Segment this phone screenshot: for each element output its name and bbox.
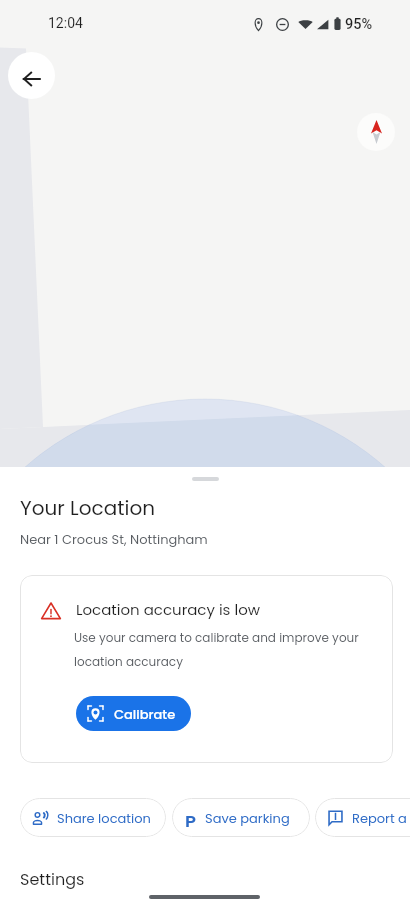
staticText: Report a problem (352, 809, 410, 827)
staticText: Settings (20, 868, 85, 890)
button[interactable]: P (172, 798, 310, 837)
button[interactable]: Report a problem (315, 798, 410, 837)
staticText: Share location (57, 809, 151, 827)
staticText: Use your camera to calibrate and improve… (74, 629, 359, 670)
button[interactable]: Compass (357, 113, 395, 151)
staticText: Location accuracy is low (76, 599, 261, 620)
staticText: 95% (345, 16, 373, 33)
staticText: 12:04 (48, 15, 83, 31)
staticText: P (185, 809, 196, 827)
button[interactable]: Back (8, 52, 55, 99)
staticText: Near 1 Crocus St, Nottingham (20, 530, 208, 548)
staticText: Calibrate (114, 705, 176, 723)
staticText: Your Location (20, 494, 155, 522)
staticText: Save parking (205, 809, 290, 827)
button[interactable]: Calibrate (76, 696, 191, 731)
button[interactable]: Share location (20, 798, 166, 837)
